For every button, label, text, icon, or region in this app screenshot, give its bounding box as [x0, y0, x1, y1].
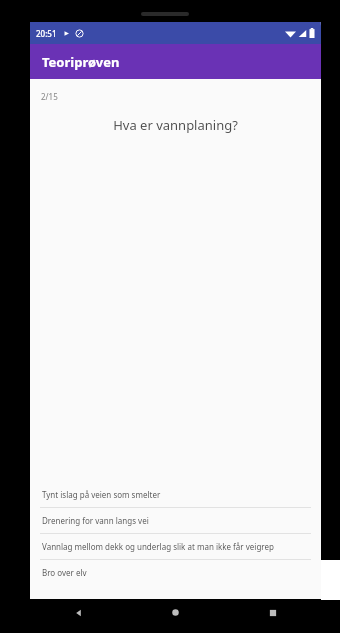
button[interactable]: Home	[127, 599, 224, 626]
button[interactable]: Tynt islag på veien som smelter	[30, 482, 321, 507]
staticText: 2/15	[41, 91, 58, 102]
button[interactable]: Drenering for vann langs vei	[30, 508, 321, 533]
button[interactable]: Vannlag mellom dekk og underlag slik at …	[30, 534, 321, 559]
button[interactable]: Bro over elv	[30, 560, 321, 585]
button[interactable]: Recent apps	[224, 599, 321, 626]
staticText: Drenering for vann langs vei	[42, 515, 149, 526]
button[interactable]: Back	[30, 599, 127, 626]
staticText: Tynt islag på veien som smelter	[42, 489, 161, 500]
staticText: Bro over elv	[42, 567, 87, 578]
staticText: Vannlag mellom dekk og underlag slik at …	[42, 541, 274, 552]
staticText: Hva er vannplaning?	[46, 116, 305, 134]
staticText: Teoriprøven	[42, 53, 120, 71]
staticText: 20:51	[36, 28, 57, 39]
